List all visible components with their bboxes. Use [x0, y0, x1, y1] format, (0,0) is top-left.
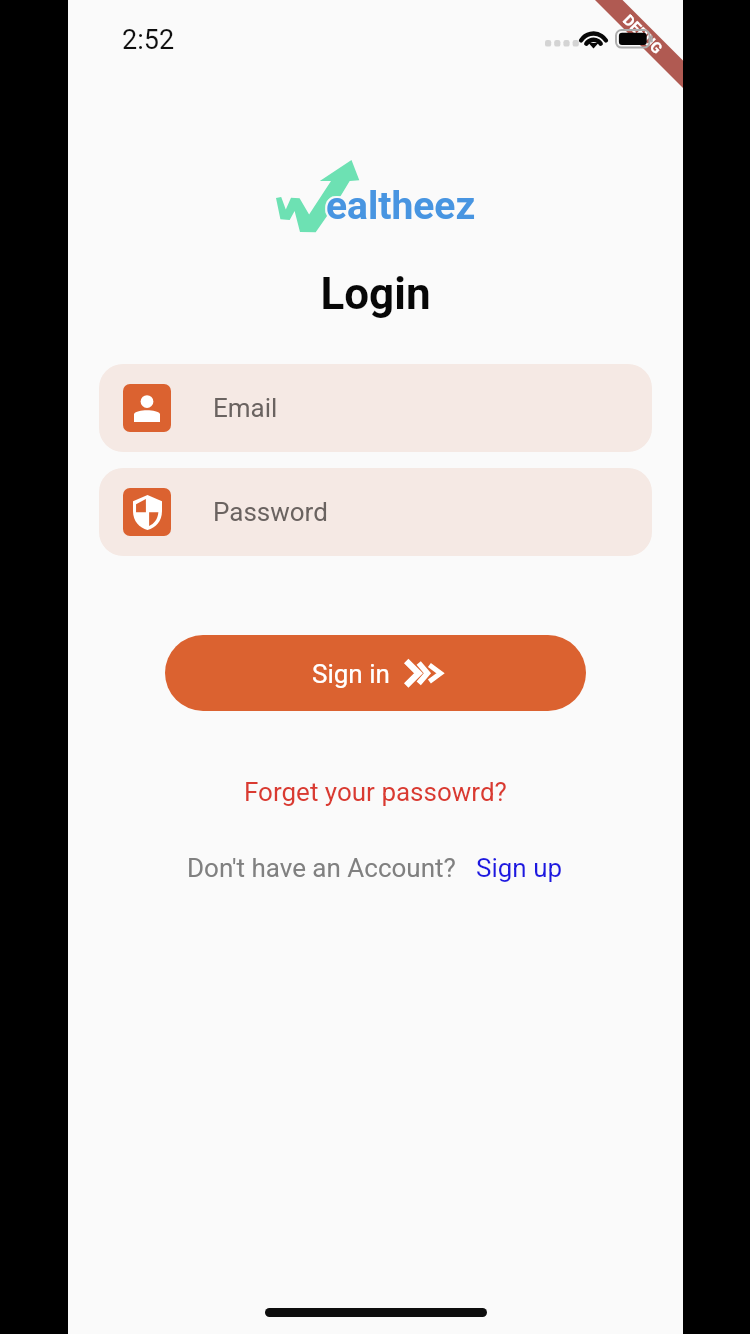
staticText: DEBUG: [619, 11, 666, 58]
button[interactable]: Password: [99, 468, 652, 556]
button[interactable]: Sign up: [474, 851, 565, 885]
staticText: ealtheez: [326, 183, 476, 229]
staticText: 2:52: [122, 24, 175, 56]
staticText: Login: [68, 268, 683, 320]
staticText: Email: [213, 393, 278, 423]
button[interactable]: Email: [99, 364, 652, 452]
staticText: Password: [213, 497, 328, 527]
staticText: Sign in: [312, 659, 390, 689]
button[interactable]: Forget your passowrd?: [238, 775, 513, 809]
staticText: Sign up: [476, 853, 563, 883]
button[interactable]: Sign in: [165, 635, 586, 711]
staticText: Don't have an Account?: [187, 853, 456, 883]
staticText: ealtheez: [326, 183, 476, 229]
staticText: Forget your passowrd?: [244, 777, 507, 807]
